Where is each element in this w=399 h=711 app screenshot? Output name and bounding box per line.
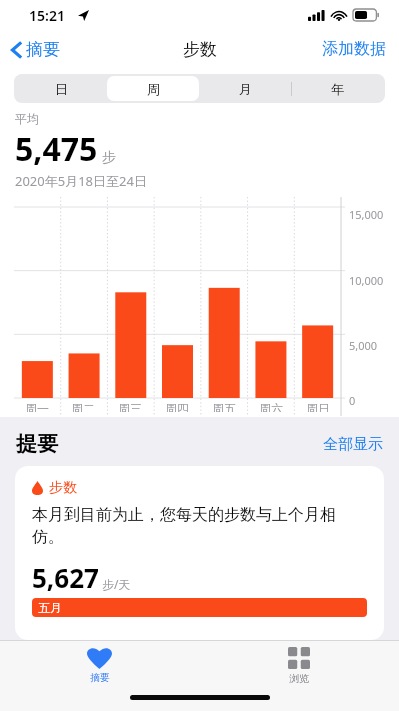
button[interactable]: 周 — [107, 76, 199, 101]
button[interactable]: 摘要 — [11, 39, 60, 60]
button[interactable]: 浏览 — [199, 641, 399, 690]
staticText: 0 — [349, 393, 356, 408]
staticText: 摘要 — [90, 671, 110, 684]
staticText: 5,627 — [32, 560, 99, 595]
staticText: 提要 — [16, 431, 58, 457]
button[interactable]: 全部显示 — [323, 435, 383, 454]
staticText: 五月 — [38, 600, 62, 615]
staticText: 浏览 — [289, 672, 309, 685]
staticText: 周四 — [165, 401, 189, 412]
button[interactable]: 年 — [291, 76, 383, 101]
button[interactable]: 摘要 — [0, 641, 199, 690]
staticText: 日 — [55, 81, 68, 97]
staticText: 5,000 — [349, 338, 378, 353]
staticText: 15,000 — [349, 207, 384, 222]
staticText: 平均 — [15, 111, 39, 126]
staticText: 步数 — [49, 479, 77, 497]
staticText: 步数 — [183, 39, 217, 60]
staticText: 月 — [239, 81, 252, 97]
button[interactable]: 月 — [199, 76, 291, 101]
staticText: 本月到目前为止，您每天的步数与上个月相仿。 — [32, 505, 367, 547]
staticText: 周三 — [118, 401, 142, 412]
button[interactable]: 添加数据 — [322, 39, 386, 59]
staticText: 周五 — [212, 401, 236, 412]
staticText: 周日 — [306, 401, 330, 412]
staticText: 5,475 — [15, 127, 98, 171]
staticText: 周一 — [25, 401, 49, 412]
staticText: 周二 — [71, 401, 95, 412]
staticText: 10,000 — [349, 273, 384, 288]
button[interactable]: 日 — [16, 76, 107, 101]
staticText: 步/天 — [102, 576, 131, 592]
button[interactable]: 步数 — [15, 466, 384, 640]
staticText: 2020年5月18日至24日 — [15, 172, 147, 190]
staticText: 步 — [102, 149, 116, 167]
staticText: 年 — [331, 81, 344, 97]
staticText: 摘要 — [26, 39, 60, 60]
staticText: 周六 — [259, 401, 283, 412]
staticText: 15:21 — [29, 6, 65, 25]
staticText: 周 — [147, 81, 160, 97]
